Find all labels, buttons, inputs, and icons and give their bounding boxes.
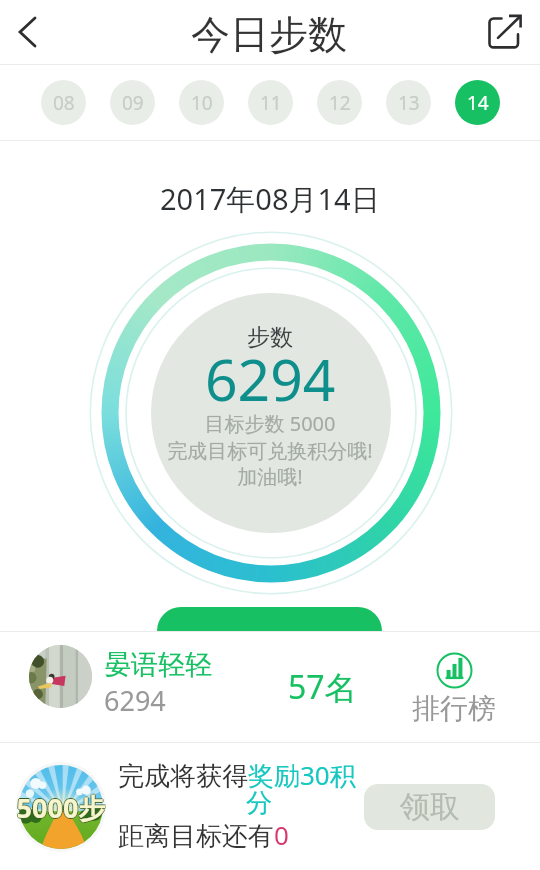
staticText: 10 (191, 90, 213, 116)
staticText: 08 (53, 90, 75, 116)
button[interactable]: Back (0, 8, 52, 56)
staticText: 排行榜 (412, 691, 496, 726)
staticText: 分 (246, 787, 272, 820)
button[interactable]: 13 (386, 80, 431, 125)
staticText: 11 (260, 90, 282, 116)
button[interactable]: 11 (248, 80, 293, 125)
staticText: 09 (122, 90, 144, 116)
staticText: 6294 (104, 682, 166, 719)
button[interactable]: 10 (179, 80, 224, 125)
button[interactable]: 09 (110, 80, 155, 125)
staticText: 6294 (205, 340, 336, 418)
staticText: 5000步 (16, 789, 105, 826)
staticText: 12 (329, 90, 351, 116)
staticText: 5000步 (16, 790, 106, 827)
staticText: 目标步数 5000 完成目标可兑换积分哦! 加油哦! (167, 410, 373, 490)
button[interactable]: 排行榜 (408, 652, 500, 726)
button[interactable]: Share (478, 6, 530, 58)
button[interactable]: 12 (317, 80, 362, 125)
staticText: 57名 (288, 665, 357, 709)
staticText: 完成将获得奖励30积 (118, 757, 356, 793)
staticText: 13 (398, 90, 420, 116)
staticText: 5000步 (16, 789, 106, 826)
staticText: 5000步 (16, 788, 106, 825)
staticText: 步数 (247, 323, 293, 352)
staticText: 今日步数 (191, 10, 347, 59)
staticText: 2017年08月14日 (160, 179, 380, 219)
button[interactable]: 14 (455, 80, 500, 125)
staticText: 14 (467, 90, 489, 116)
button[interactable]: 领取 (364, 784, 495, 830)
staticText: 5000步 (17, 789, 106, 826)
staticText: 领取 (400, 788, 460, 826)
button[interactable]: Avatar (29, 645, 92, 708)
staticText: 距离目标还有0 (118, 817, 289, 853)
button[interactable]: Start (157, 607, 382, 631)
button[interactable]: 08 (41, 80, 86, 125)
staticText: 晏语轻轻 (104, 648, 212, 682)
